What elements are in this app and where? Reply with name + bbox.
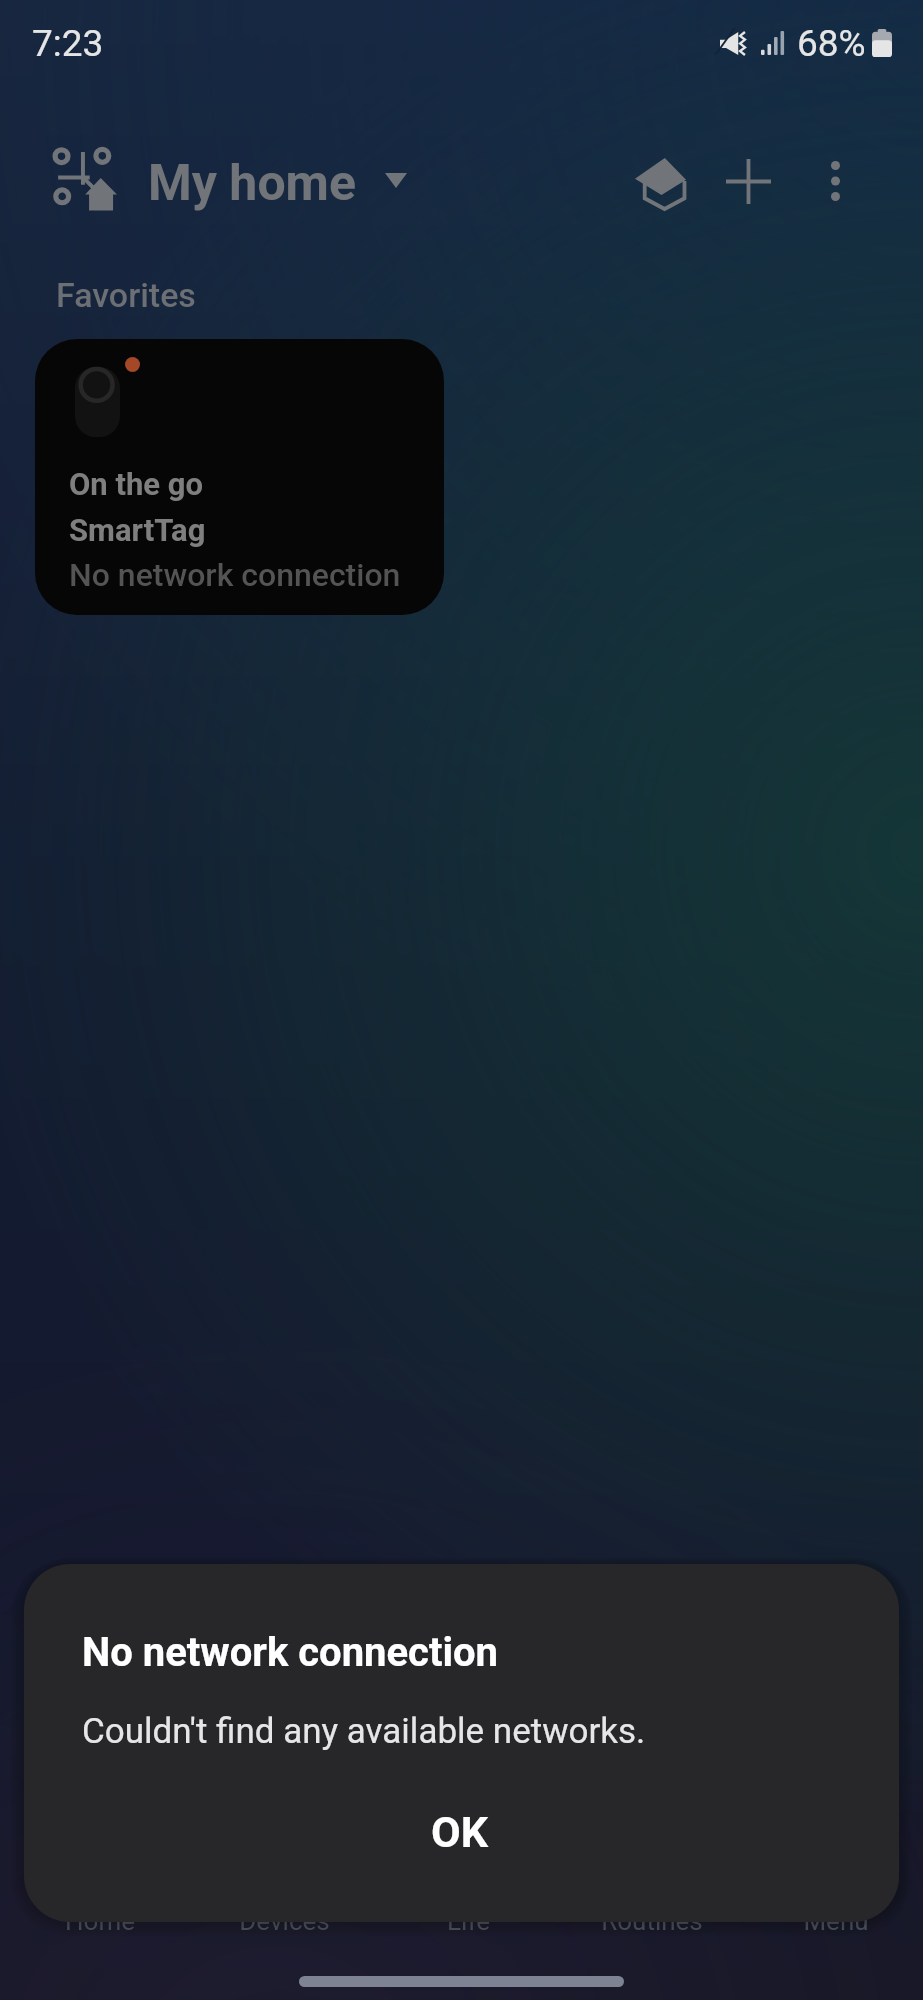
- staticText: Life: [447, 1906, 490, 1936]
- button[interactable]: Routines: [563, 1806, 741, 1946]
- button[interactable]: Life: [379, 1806, 557, 1946]
- staticText: On the go: [69, 466, 203, 502]
- staticText: No network connection: [82, 1629, 499, 1676]
- staticText: Couldn't find any available networks.: [82, 1711, 646, 1752]
- button[interactable]: OK: [338, 1782, 581, 1882]
- staticText: OK: [431, 1807, 488, 1857]
- staticText: My home: [148, 154, 356, 213]
- staticText: Routines: [601, 1906, 703, 1936]
- staticText: Home: [65, 1906, 135, 1936]
- button[interactable]: Devices: [195, 1806, 373, 1946]
- button[interactable]: Add device: [700, 133, 796, 229]
- button[interactable]: Menu: [747, 1806, 923, 1946]
- button[interactable]: On the go: [35, 339, 444, 615]
- staticText: Menu: [803, 1906, 869, 1936]
- staticText: Favorites: [56, 275, 196, 315]
- staticText: No network connection: [69, 556, 401, 594]
- staticText: 68%: [797, 22, 866, 65]
- staticText: 7:23: [32, 22, 104, 65]
- button[interactable]: My home: [52, 146, 407, 214]
- staticText: Devices: [239, 1906, 330, 1936]
- staticText: SmartTag: [69, 512, 206, 548]
- button[interactable]: Home: [11, 1806, 189, 1946]
- button[interactable]: Map view: [613, 135, 709, 231]
- button[interactable]: More options: [787, 133, 883, 229]
